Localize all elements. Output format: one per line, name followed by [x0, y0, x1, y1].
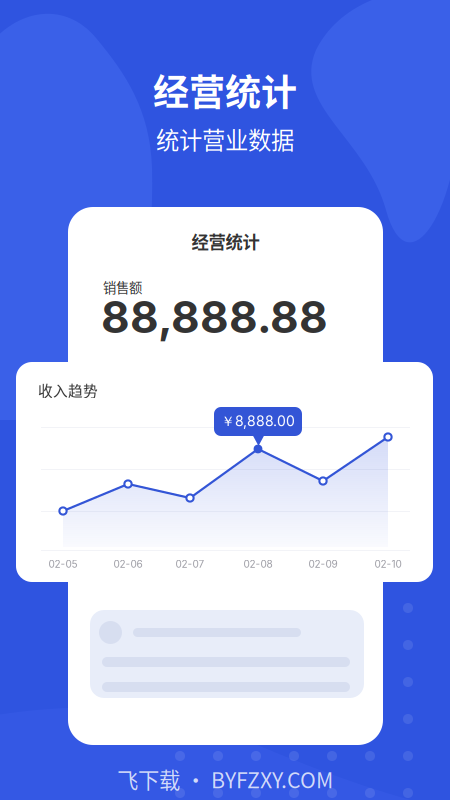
- staticText: 飞下载 · BYFZXY.COM: [117, 764, 333, 794]
- staticText: 销售额: [103, 277, 142, 297]
- staticText: 02-07: [175, 558, 204, 570]
- staticText: 经营统计: [153, 64, 297, 116]
- staticText: 02-08: [243, 558, 272, 570]
- staticText: 88,888.88: [101, 290, 328, 344]
- staticText: 02-09: [308, 558, 337, 570]
- staticText: 统计营业数据: [156, 122, 294, 156]
- staticText: 经营统计: [191, 228, 259, 254]
- staticText: 02-10: [374, 558, 401, 570]
- staticText: 02-06: [113, 558, 142, 570]
- staticText: 收入趋势: [38, 379, 98, 401]
- staticText: ￥8,888.00: [221, 413, 295, 430]
- staticText: 02-05: [48, 558, 77, 570]
